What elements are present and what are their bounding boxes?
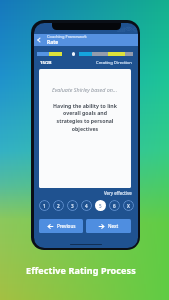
staticText: Creating Direction bbox=[96, 60, 132, 66]
button[interactable]: Previous bbox=[39, 219, 83, 233]
staticText: 4 bbox=[85, 203, 88, 209]
button[interactable]: 1 bbox=[39, 200, 50, 211]
staticText: X bbox=[127, 203, 130, 209]
button[interactable]: 2 bbox=[53, 200, 64, 211]
other: Back bbox=[35, 36, 43, 44]
staticText: 6 bbox=[113, 203, 116, 209]
staticText: Next bbox=[108, 223, 119, 229]
staticText: Having the ability to link overall goals… bbox=[51, 102, 119, 132]
button[interactable]: 3 bbox=[67, 200, 78, 211]
staticText: Evaluate Shirley based on... bbox=[52, 86, 118, 93]
staticText: Rate bbox=[47, 39, 59, 46]
staticText: Previous bbox=[57, 223, 76, 229]
button[interactable]: 4 bbox=[81, 200, 92, 211]
staticText: Effective Rating Process bbox=[26, 264, 136, 276]
button[interactable]: X bbox=[123, 200, 134, 211]
staticText: Very effective bbox=[104, 190, 132, 196]
staticText: 2 bbox=[57, 203, 60, 209]
staticText: 5 bbox=[99, 203, 102, 209]
button[interactable]: Next bbox=[86, 219, 131, 233]
button[interactable]: Evaluate Shirley based on... bbox=[39, 69, 131, 188]
other: Status icons bbox=[117, 27, 134, 32]
staticText: Coaching Framework bbox=[47, 34, 87, 39]
staticText: 3 bbox=[71, 203, 74, 209]
button[interactable]: Back bbox=[34, 34, 138, 46]
button[interactable]: 5 bbox=[95, 200, 106, 211]
staticText: 15/28 bbox=[40, 60, 52, 66]
staticText: 1 bbox=[43, 203, 46, 209]
button[interactable]: 6 bbox=[109, 200, 120, 211]
